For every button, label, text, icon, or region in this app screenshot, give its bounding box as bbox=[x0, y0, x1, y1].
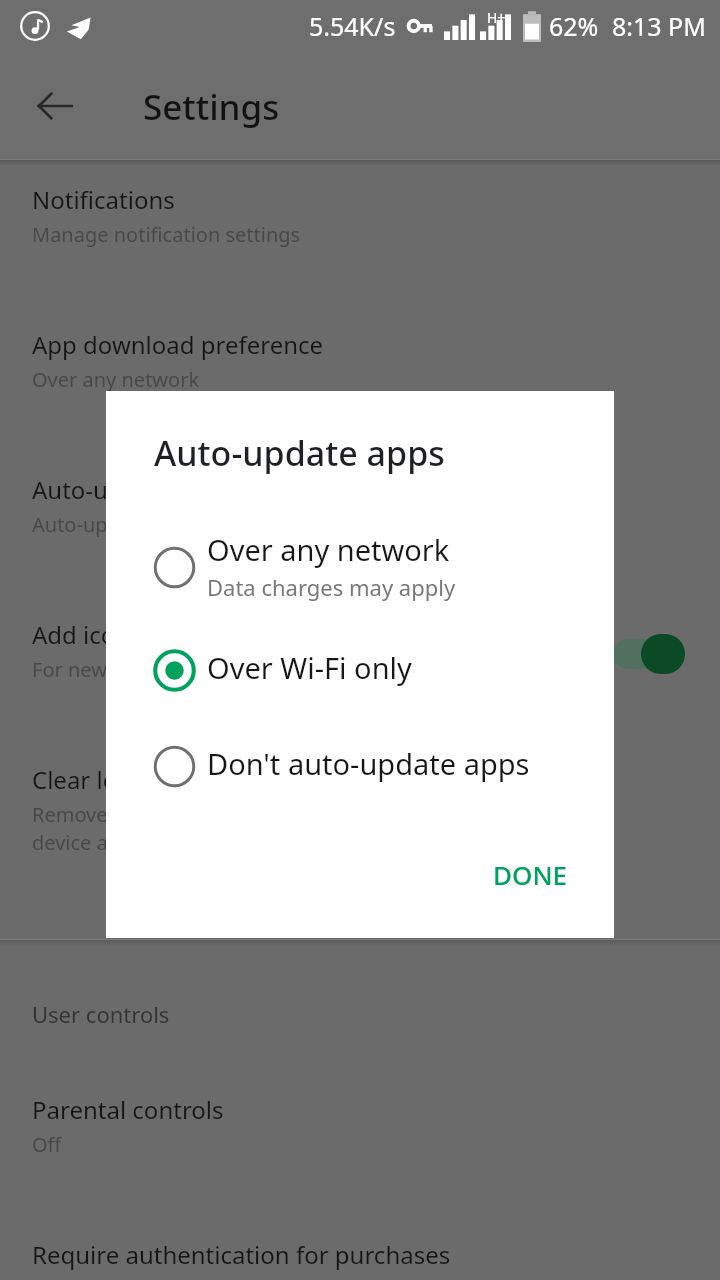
staticText: Manage notification settings bbox=[32, 221, 301, 248]
button[interactable]: Add icon to Home screen bbox=[32, 618, 720, 683]
button[interactable]: Add icon to Home screen toggle bbox=[611, 634, 685, 674]
button[interactable]: Over Wi-Fi only bbox=[106, 638, 614, 699]
button[interactable]: Back bbox=[23, 74, 87, 138]
staticText: H+ bbox=[487, 8, 506, 27]
staticText: Remove all the searches you have perform… bbox=[32, 801, 546, 856]
button[interactable]: Parental controls bbox=[32, 1093, 720, 1158]
button[interactable]: DONE bbox=[470, 843, 590, 905]
staticText: Data charges may apply bbox=[207, 572, 456, 602]
button[interactable]: Clear local search history bbox=[32, 763, 720, 856]
staticText: User controls bbox=[32, 999, 170, 1029]
button[interactable]: Auto-update apps bbox=[32, 473, 720, 538]
staticText: Auto-update apps bbox=[32, 473, 234, 506]
staticText: Settings bbox=[143, 83, 280, 131]
staticText: For new apps after installing bbox=[32, 656, 299, 683]
staticText: Over any network bbox=[207, 530, 450, 569]
staticText: Notifications bbox=[32, 183, 175, 216]
staticText: Over any network bbox=[32, 366, 200, 393]
staticText: Over Wi-Fi only bbox=[207, 648, 412, 687]
button[interactable]: Notifications bbox=[32, 183, 720, 248]
staticText: Require authentication for purchases bbox=[32, 1238, 451, 1271]
staticText: Auto-update apps bbox=[154, 430, 445, 476]
button[interactable]: Don't auto-update apps bbox=[106, 734, 614, 795]
staticText: 8:13 PM bbox=[612, 9, 706, 43]
staticText: DONE bbox=[493, 857, 568, 892]
staticText: Clear local search history bbox=[32, 763, 314, 796]
staticText: Off bbox=[32, 1131, 62, 1158]
staticText: 5.54K/s bbox=[309, 9, 396, 43]
staticText: Parental controls bbox=[32, 1093, 224, 1126]
staticText: Add icon to Home screen bbox=[32, 618, 315, 651]
button[interactable]: App download preference bbox=[32, 328, 720, 393]
staticText: 62% bbox=[549, 9, 599, 43]
staticText: Don't auto-update apps bbox=[207, 744, 530, 783]
staticText: Auto-update apps over Wi-Fi only bbox=[32, 511, 343, 538]
staticText: App download preference bbox=[32, 328, 324, 361]
button[interactable]: Over any network bbox=[106, 520, 614, 612]
